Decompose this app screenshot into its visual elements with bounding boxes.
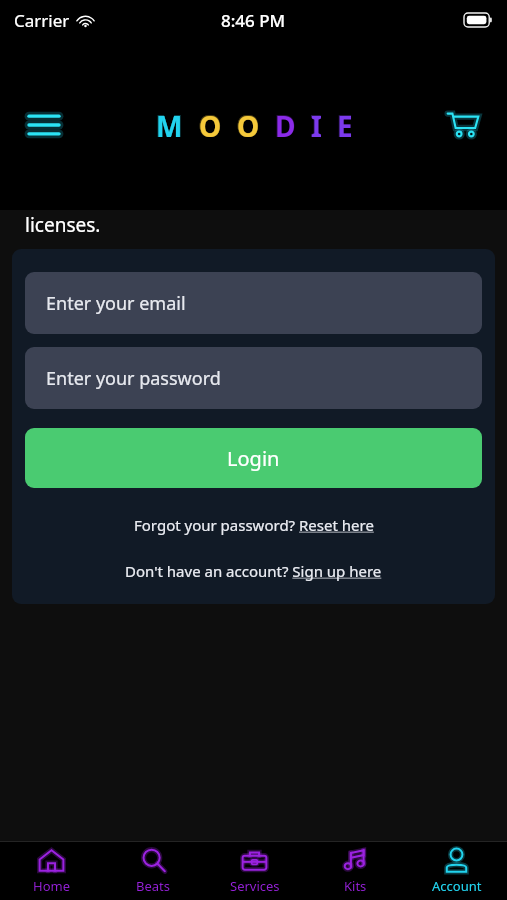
button[interactable]: Account (406, 842, 507, 900)
staticText: Enter your email (46, 291, 186, 316)
staticText: Don't have an account? Sign up here (125, 561, 382, 581)
staticText: M (155, 105, 184, 146)
staticText: I (310, 105, 322, 146)
staticText: Enter your password (46, 366, 221, 391)
staticText: Home (33, 877, 70, 895)
button[interactable]: Kits (305, 842, 406, 900)
staticText: M (156, 107, 183, 145)
button[interactable]: Enter your email (25, 272, 482, 334)
staticText: Beats (136, 877, 170, 895)
button[interactable]: Enter your password (25, 347, 482, 409)
staticText: O (198, 105, 222, 146)
staticText: I (311, 107, 322, 145)
button[interactable]: Menu (16, 97, 72, 153)
staticText: 8:46 PM (221, 9, 286, 32)
staticText: D (274, 105, 296, 146)
button[interactable]: Services (204, 842, 305, 900)
staticText: D (275, 107, 296, 145)
button[interactable]: Login (25, 428, 482, 488)
staticText: O (236, 105, 260, 146)
staticText: E (337, 107, 353, 145)
staticText: Account (432, 877, 482, 895)
staticText: Login (227, 445, 280, 472)
staticText: licenses. (25, 212, 101, 238)
staticText: O (237, 107, 260, 145)
button[interactable]: Cart (435, 97, 491, 153)
staticText: Kits (344, 877, 367, 895)
button[interactable]: Don't have an account? Sign up here (25, 561, 482, 581)
staticText: Carrier (14, 9, 70, 32)
button[interactable]: Forgot your password? Reset here (25, 515, 482, 535)
staticText: O (199, 107, 222, 145)
staticText: Services (230, 877, 280, 895)
button[interactable]: Home (0, 842, 102, 900)
staticText: Forgot your password? Reset here (134, 515, 374, 535)
staticText: E (336, 105, 353, 146)
button[interactable]: Beats (102, 842, 204, 900)
